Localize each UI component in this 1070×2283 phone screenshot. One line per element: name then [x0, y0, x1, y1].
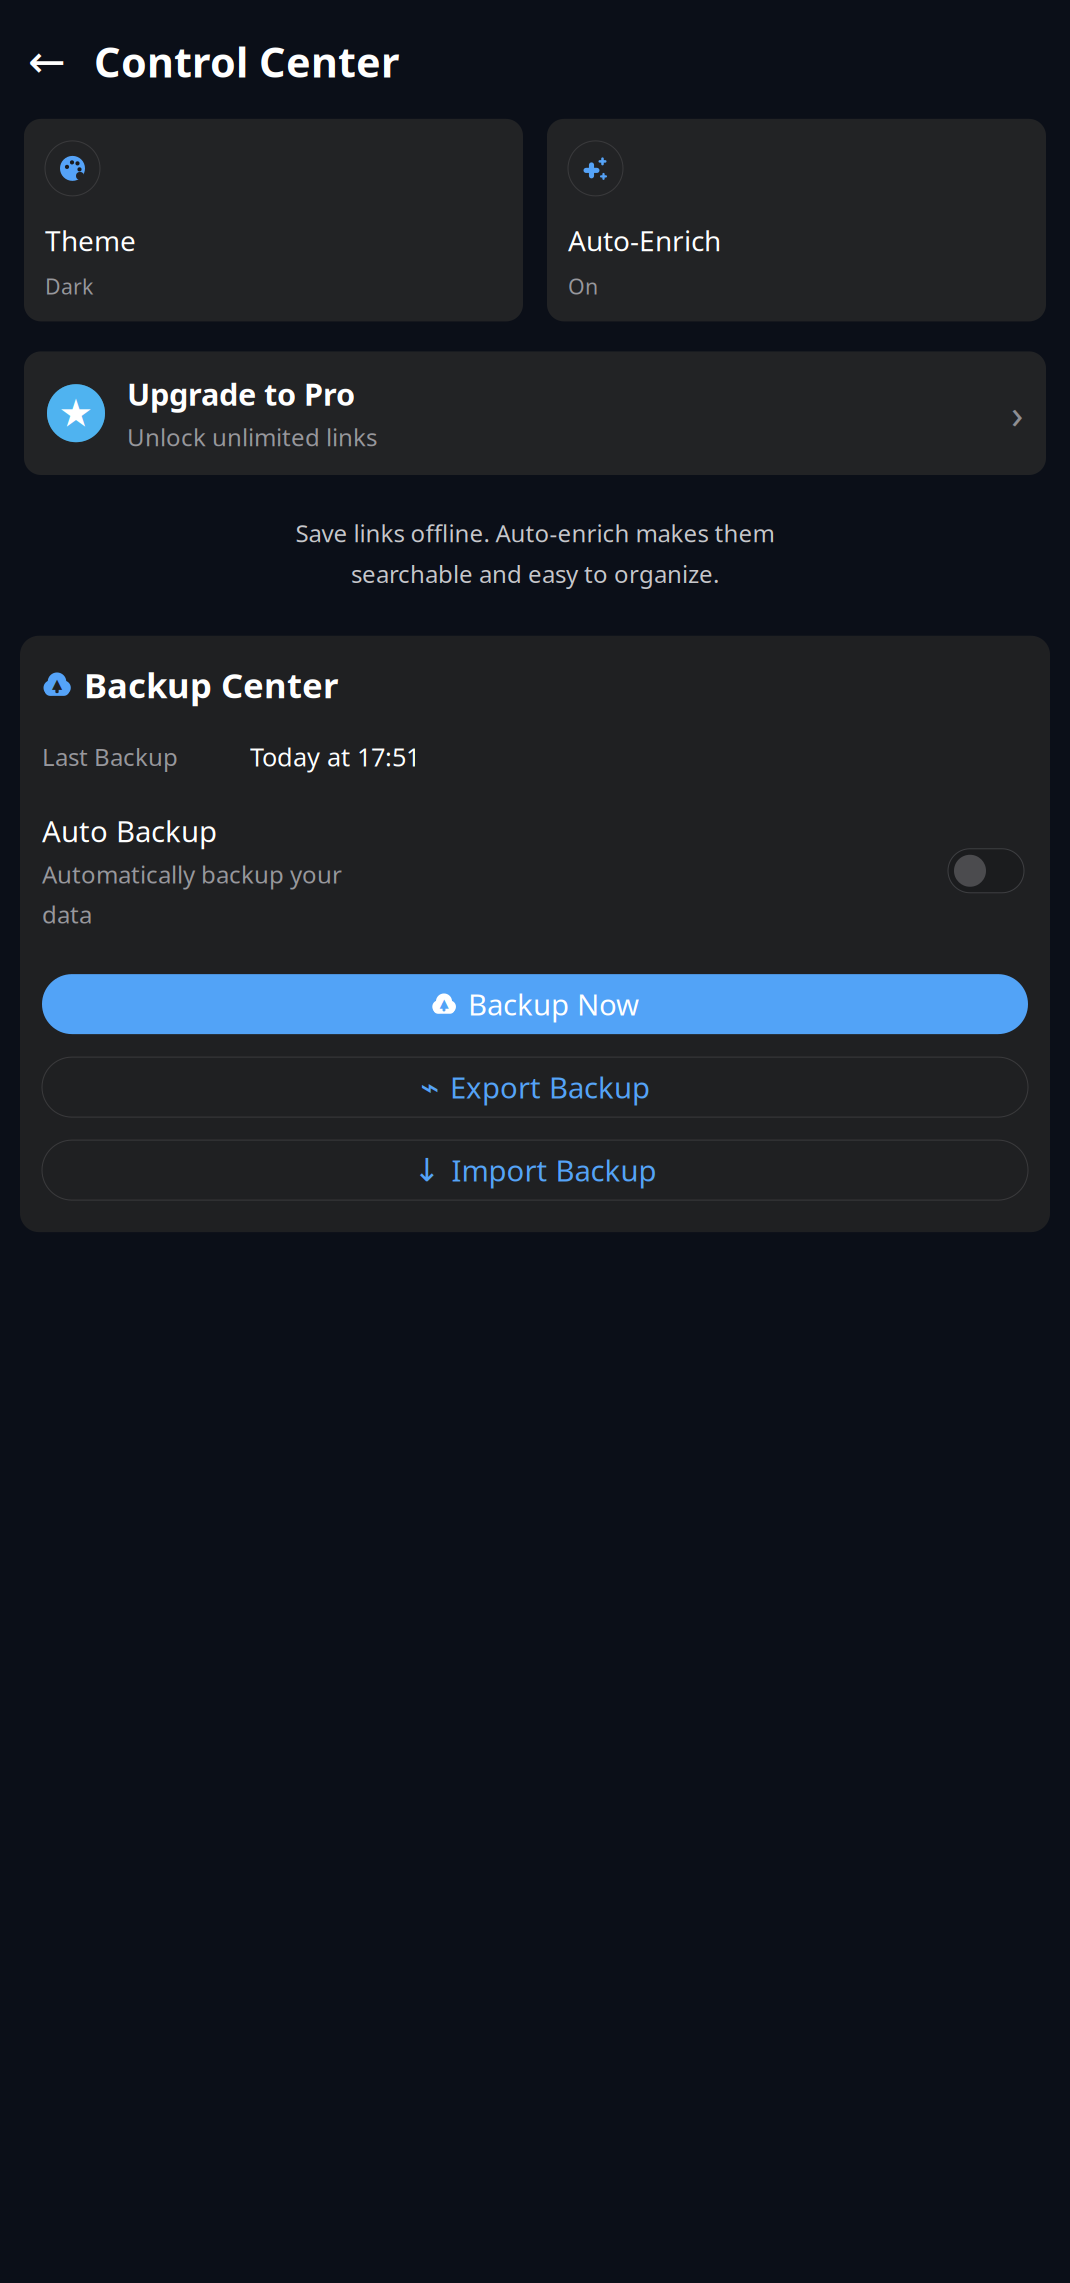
- staticText: Dark: [45, 272, 93, 300]
- staticText: Backup Now: [468, 985, 639, 1024]
- staticText: Automatically backup your: [42, 858, 342, 890]
- staticText: Save links offline. Auto-enrich makes th…: [295, 517, 774, 549]
- button[interactable]: ⌁: [42, 1057, 1028, 1117]
- button[interactable]: Back: [24, 38, 70, 84]
- staticText: Auto-Enrich: [568, 222, 721, 259]
- staticText: On: [568, 272, 598, 300]
- staticText: ★: [58, 391, 93, 435]
- staticText: Unlock unlimited links: [127, 421, 377, 453]
- staticText: Control Center: [94, 34, 399, 89]
- staticText: Last Backup: [42, 741, 178, 773]
- staticText: Auto Backup: [42, 811, 217, 850]
- button[interactable]: ▲: [42, 974, 1028, 1034]
- button[interactable]: Auto-Enrich: [547, 119, 1046, 321]
- staticText: Export Backup: [450, 1068, 650, 1107]
- staticText: Import Backup: [451, 1151, 656, 1190]
- button[interactable]: ↓: [42, 1140, 1028, 1200]
- staticText: Theme: [45, 222, 136, 259]
- staticText: Upgrade to Pro: [127, 373, 355, 414]
- staticText: ▲: [439, 996, 448, 1010]
- staticText: data: [42, 898, 92, 930]
- staticText: ←: [28, 36, 66, 87]
- staticText: ⌁: [420, 1069, 439, 1105]
- button[interactable]: Auto Backup, off: [948, 849, 1024, 893]
- staticText: searchable and easy to organize.: [351, 558, 719, 590]
- staticText: ↓: [413, 1152, 440, 1188]
- staticText: Backup Center: [84, 662, 338, 708]
- staticText: Today at 17:51: [250, 740, 420, 773]
- staticText: ▲: [52, 676, 62, 691]
- button[interactable]: Theme: [24, 119, 523, 321]
- button[interactable]: ★: [24, 351, 1046, 475]
- staticText: ›: [1011, 387, 1023, 440]
